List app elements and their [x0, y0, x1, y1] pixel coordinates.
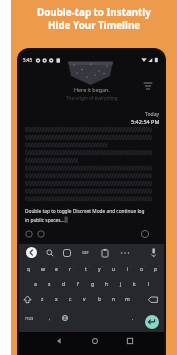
staticText: k — [133, 281, 136, 288]
button[interactable] — [143, 82, 153, 91]
staticText: f — [77, 281, 79, 288]
staticText: l — [148, 281, 150, 288]
button[interactable]: p — [149, 263, 162, 276]
button[interactable]: l — [142, 278, 155, 291]
button[interactable]: q — [22, 263, 35, 276]
staticText: , — [49, 315, 51, 322]
staticText: n — [112, 296, 116, 303]
button[interactable]: a — [29, 278, 42, 291]
staticText: b — [98, 296, 102, 303]
button[interactable]: x — [50, 293, 63, 306]
staticText: m — [125, 296, 130, 303]
staticText: i — [127, 266, 129, 273]
staticText: 2 — [45, 264, 47, 267]
staticText: 0 — [158, 264, 160, 267]
staticText: Double tap to toggle Discreet Mode and c… — [25, 208, 145, 215]
staticText: Double-tap to Instantly — [37, 6, 151, 19]
staticText: t — [85, 266, 87, 273]
button[interactable] — [119, 248, 131, 258]
staticText: in public spaces... — [25, 217, 65, 224]
staticText: a — [34, 281, 37, 288]
button[interactable]: t — [79, 263, 92, 276]
button[interactable]: s — [43, 278, 56, 291]
button[interactable] — [89, 335, 101, 347]
button[interactable] — [100, 248, 110, 258]
button[interactable] — [62, 248, 72, 258]
button[interactable]: m — [121, 293, 134, 306]
button[interactable]: i — [121, 263, 134, 276]
button[interactable]: v — [78, 293, 91, 306]
button[interactable] — [53, 335, 65, 347]
button[interactable]: e — [50, 263, 63, 276]
staticText: z — [41, 296, 44, 303]
button[interactable]: c — [64, 293, 77, 306]
button[interactable]: y — [93, 263, 106, 276]
button[interactable]: . — [128, 311, 138, 325]
staticText: Today — [145, 111, 160, 118]
staticText: r — [69, 266, 72, 273]
staticText: u — [112, 266, 116, 273]
staticText: h — [105, 281, 109, 288]
button[interactable]: j — [114, 278, 127, 291]
button[interactable] — [24, 229, 34, 239]
staticText: 8 — [130, 264, 132, 267]
staticText: p — [154, 266, 158, 273]
button[interactable] — [145, 315, 159, 329]
staticText: e — [55, 266, 58, 273]
staticText: d — [62, 281, 66, 288]
button[interactable] — [36, 229, 46, 239]
staticText: g — [91, 281, 95, 288]
button[interactable]: b — [93, 293, 106, 306]
button[interactable] — [146, 293, 160, 306]
button[interactable]: , — [45, 311, 55, 325]
staticText: 4 — [73, 264, 75, 267]
staticText: 7 — [116, 264, 118, 267]
button[interactable]: n — [107, 293, 120, 306]
staticText: Here it began. — [74, 86, 110, 93]
button[interactable] — [60, 313, 70, 323]
staticText: . — [132, 315, 134, 322]
button[interactable]: g — [86, 278, 99, 291]
staticText: j — [120, 281, 122, 288]
button[interactable]: o — [135, 263, 148, 276]
button[interactable]: ?123 — [21, 311, 38, 325]
button[interactable] — [140, 229, 150, 239]
staticText: 5 — [88, 264, 90, 267]
staticText: x — [55, 296, 58, 303]
staticText: c — [69, 296, 72, 303]
staticText: 5:42:54 PM — [131, 118, 160, 125]
staticText: 1 — [31, 264, 33, 267]
staticText: The origin of everything — [66, 95, 118, 101]
staticText: v — [83, 296, 86, 303]
staticText: w — [41, 266, 45, 273]
staticText: 9 — [144, 264, 146, 267]
button[interactable] — [21, 293, 34, 306]
button[interactable]: GIF — [78, 248, 93, 258]
button[interactable]: u — [107, 263, 120, 276]
button[interactable]: w — [36, 263, 49, 276]
staticText: y — [98, 266, 101, 273]
button[interactable]: d — [57, 278, 70, 291]
button[interactable] — [148, 247, 159, 258]
button[interactable]: r — [64, 263, 77, 276]
staticText: 3 — [59, 264, 61, 267]
staticText: 5:45 — [23, 57, 33, 63]
staticText: 6 — [102, 264, 104, 267]
staticText: GIF — [82, 250, 89, 256]
staticText: o — [140, 266, 144, 273]
button[interactable] — [45, 248, 55, 258]
staticText: s — [48, 281, 51, 288]
button[interactable]: k — [128, 278, 141, 291]
button[interactable]: h — [100, 278, 113, 291]
staticText: Hide Your Timeline — [48, 19, 141, 32]
staticText: q — [27, 266, 31, 273]
button[interactable] — [26, 247, 37, 258]
staticText: ?123 — [25, 316, 34, 321]
button[interactable]: z — [36, 293, 49, 306]
button[interactable]: f — [71, 278, 84, 291]
button[interactable] — [124, 335, 136, 347]
